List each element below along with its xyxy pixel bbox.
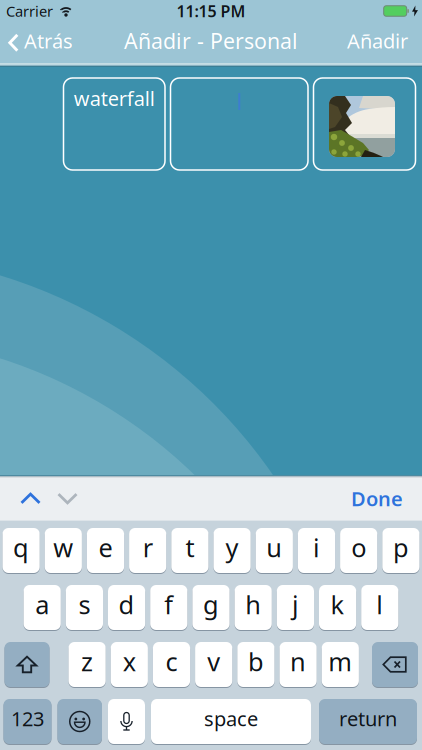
staticText: u [266,531,282,564]
button[interactable]: b [237,642,274,687]
button[interactable]: j [277,585,314,630]
button[interactable]: f [150,585,187,630]
button[interactable]: return [319,699,417,744]
button[interactable]: g [192,585,230,630]
button[interactable]: o [340,528,377,573]
staticText: i [313,531,320,564]
button[interactable]: 123 [3,699,51,744]
button[interactable]: q [2,528,40,573]
button[interactable]: v [195,642,232,687]
staticText: w [53,531,73,564]
staticText: y [226,531,239,564]
button[interactable]: h [235,585,272,630]
staticText: Atrás [24,27,73,54]
staticText: v [207,645,220,678]
button[interactable]: u [256,528,293,573]
staticText: d [119,588,135,621]
button[interactable]: Atrás [0,29,73,56]
staticText: x [123,645,136,678]
staticText: b [248,645,264,678]
button[interactable]: t [171,528,208,573]
staticText: z [81,645,93,678]
staticText: n [290,645,306,678]
button[interactable]: s [66,585,103,630]
button[interactable]: y [213,528,251,573]
staticText: j [292,588,299,621]
staticText: p [393,531,409,564]
button[interactable] [170,78,308,170]
staticText: return [339,705,397,732]
button[interactable] [108,699,145,744]
button[interactable]: p [382,528,419,573]
button[interactable]: Añadir [347,29,422,56]
staticText: a [35,588,49,621]
staticText: q [13,531,29,564]
staticText: o [351,531,366,564]
staticText: Carrier [6,1,53,21]
button[interactable]: i [298,528,335,573]
staticText: 11:15 PM [176,0,245,22]
button[interactable]: x [111,642,148,687]
button[interactable]: space [151,699,311,744]
staticText: Añadir - Personal [124,27,298,55]
staticText: k [331,588,345,621]
button[interactable]: l [361,585,398,630]
staticText: e [98,531,112,564]
button[interactable]: waterfall [63,78,165,170]
button[interactable]: n [279,642,317,687]
staticText: c [165,645,177,678]
staticText: space [204,705,258,732]
button[interactable]: a [24,585,61,630]
staticText: t [185,531,194,564]
button[interactable]: z [68,642,106,687]
staticText: r [143,531,153,564]
staticText: g [203,588,219,621]
staticText: waterfall [74,85,155,112]
staticText: h [245,588,261,621]
staticText: f [164,588,173,621]
staticText: 123 [11,705,44,732]
button[interactable] [0,492,41,504]
staticText: l [376,588,383,621]
button[interactable]: m [322,642,359,687]
staticText: Done [351,485,403,512]
button[interactable]: w [45,528,82,573]
button[interactable] [41,492,78,504]
staticText: s [78,588,90,621]
button[interactable] [57,699,102,744]
button[interactable]: d [108,585,145,630]
button[interactable] [313,78,415,170]
button[interactable]: k [319,585,356,630]
button[interactable]: c [153,642,190,687]
button[interactable] [4,642,49,687]
button[interactable]: Done [351,485,422,512]
staticText: Añadir [347,27,408,54]
button[interactable]: r [129,528,166,573]
button[interactable] [372,642,418,687]
staticText: m [328,645,352,678]
button[interactable]: e [87,528,124,573]
